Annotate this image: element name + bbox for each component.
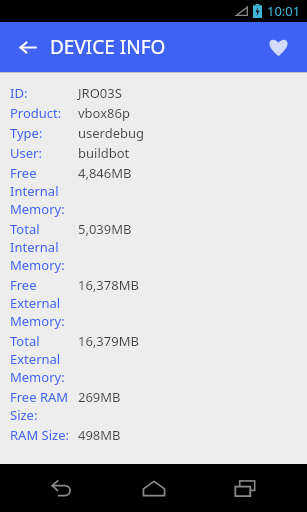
staticText: 269MB [78, 388, 121, 406]
button[interactable]: User: [0, 143, 307, 163]
button[interactable]: Total Internal Memory: [0, 219, 307, 275]
staticText: JRO03S [78, 84, 122, 102]
staticText: ID: [10, 84, 28, 102]
staticText: Free RAM Size: [10, 388, 78, 424]
button[interactable]: Favorite [261, 30, 295, 64]
button[interactable]: RAM Size: [0, 425, 307, 445]
staticText: Free External Memory: [10, 276, 78, 330]
staticText: User: [10, 144, 42, 162]
button[interactable]: Back [32, 464, 92, 512]
button[interactable]: Type: [0, 123, 307, 143]
button[interactable]: Home [124, 464, 184, 512]
staticText: 16,379MB [78, 332, 139, 350]
staticText: 5,039MB [78, 220, 132, 238]
staticText: 498MB [78, 426, 121, 444]
staticText: DEVICE INFO [50, 34, 166, 60]
button[interactable]: ID: [0, 83, 307, 103]
staticText: Total Internal Memory: [10, 220, 78, 274]
button[interactable]: Free RAM Size: [0, 387, 307, 425]
button[interactable]: Product: [0, 103, 307, 123]
staticText: Product: [10, 104, 62, 122]
staticText: 16,378MB [78, 276, 139, 294]
staticText: 4,846MB [78, 164, 132, 182]
button[interactable]: Total External Memory: [0, 331, 307, 387]
staticText: 10:01 [267, 2, 301, 20]
staticText: Type: [10, 124, 43, 142]
staticText: userdebug [78, 124, 145, 142]
staticText: RAM Size: [10, 426, 69, 444]
button[interactable]: Back [10, 30, 44, 64]
button[interactable]: Recents [215, 464, 275, 512]
button[interactable]: Free Internal Memory: [0, 163, 307, 219]
button[interactable]: Free External Memory: [0, 275, 307, 331]
staticText: vbox86p [78, 104, 130, 122]
staticText: Total External Memory: [10, 332, 78, 386]
staticText: buildbot [78, 144, 130, 162]
staticText: Free Internal Memory: [10, 164, 78, 218]
